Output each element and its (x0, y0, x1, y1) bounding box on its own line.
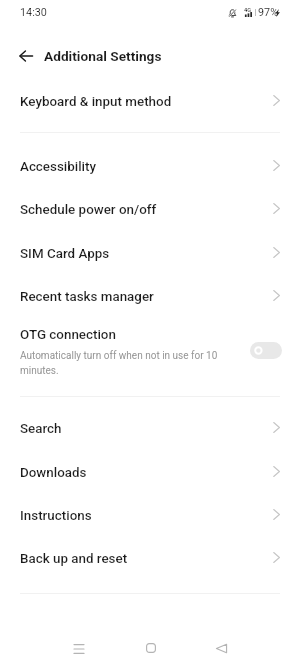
staticText: 14:30 (20, 6, 47, 19)
staticText: 4G (244, 7, 251, 14)
button[interactable]: Keyboard & input method (0, 80, 300, 123)
staticText: SIM Card Apps (20, 246, 273, 262)
button[interactable]: Search (0, 407, 300, 450)
button[interactable]: OTG connection toggle (250, 342, 282, 359)
staticText: Instructions (20, 508, 273, 524)
button[interactable]: Accessibility (0, 145, 300, 188)
staticText: 97% (258, 6, 279, 19)
staticText: Back up and reset (20, 551, 273, 567)
button[interactable]: Instructions (0, 494, 300, 537)
button[interactable]: Recent apps (57, 627, 101, 667)
button[interactable]: Downloads (0, 451, 300, 494)
button[interactable]: Back up and reset (0, 537, 300, 580)
staticText: Accessibility (20, 159, 273, 175)
staticText: Recent tasks manager (20, 289, 273, 305)
staticText: Keyboard & input method (20, 94, 273, 110)
button[interactable]: Back (12, 43, 40, 69)
button[interactable]: Schedule power on/off (0, 188, 300, 231)
staticText: OTG connection (20, 327, 116, 343)
button[interactable]: Back (199, 626, 243, 667)
button[interactable]: OTG connection (0, 319, 300, 392)
staticText: Downloads (20, 465, 273, 481)
staticText: Additional Settings (44, 48, 162, 64)
button[interactable]: SIM Card Apps (0, 232, 300, 275)
button[interactable]: Home (129, 626, 173, 667)
staticText: Search (20, 421, 273, 437)
staticText: Automatically turn off when not in use f… (20, 350, 224, 376)
staticText: Schedule power on/off (20, 202, 273, 218)
button[interactable]: Recent tasks manager (0, 275, 300, 318)
